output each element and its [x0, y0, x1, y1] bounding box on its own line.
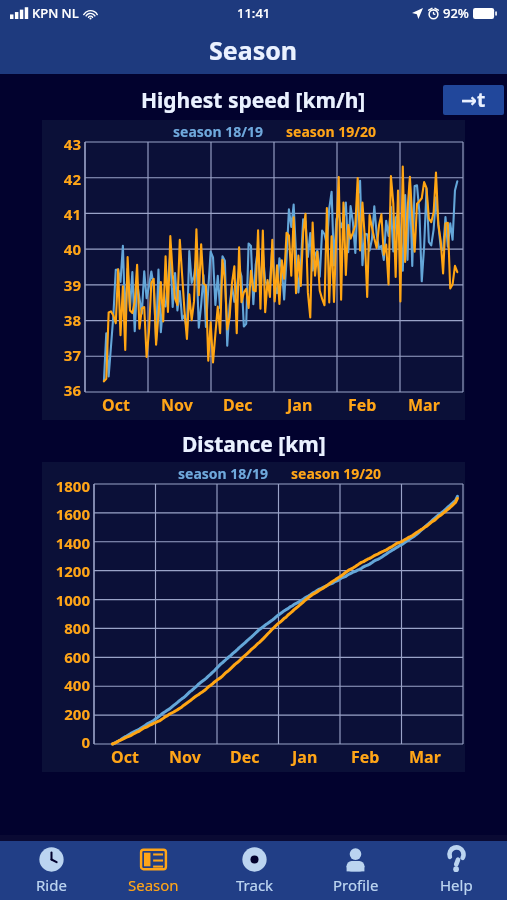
staticText: Help [440, 875, 473, 895]
staticText: Mar [408, 394, 440, 416]
staticText: Nov [169, 746, 201, 768]
staticText: Jan [292, 746, 318, 768]
staticText: Dec [230, 746, 260, 768]
staticText: →t [461, 87, 486, 113]
staticText: 41 [63, 204, 81, 224]
staticText: Season [128, 875, 179, 895]
button[interactable]: Profile [305, 841, 406, 900]
staticText: 39 [63, 275, 81, 295]
staticText: Mar [409, 746, 441, 768]
staticText: 42 [63, 169, 81, 189]
button[interactable]: Switch to time axis [443, 85, 504, 115]
staticText: 37 [63, 345, 81, 365]
button[interactable]: Track [204, 841, 305, 900]
staticText: Dec [223, 394, 253, 416]
staticText: season 19/20 [286, 122, 377, 141]
button[interactable]: Season [102, 841, 204, 900]
staticText: season 18/19 [173, 122, 264, 141]
staticText: 43 [63, 134, 81, 154]
staticText: 11:41 [237, 4, 271, 22]
staticText: 92% [443, 4, 469, 22]
staticText: 1800 [55, 476, 90, 496]
staticText: 1000 [55, 590, 90, 610]
staticText: Highest speed [km/h] [141, 86, 366, 115]
staticText: 400 [64, 675, 90, 695]
staticText: Ride [36, 875, 67, 895]
staticText: Feb [351, 746, 380, 768]
staticText: Oct [102, 394, 130, 416]
staticText: season 19/20 [291, 464, 382, 483]
staticText: Distance [km] [182, 430, 326, 459]
staticText: 38 [63, 310, 81, 330]
staticText: Feb [348, 394, 377, 416]
staticText: Track [236, 875, 274, 895]
staticText: Oct [111, 746, 139, 768]
staticText: 0 [81, 732, 90, 752]
button[interactable]: Ride [0, 841, 102, 900]
staticText: Profile [333, 875, 379, 895]
staticText: KPN NL [32, 4, 79, 22]
staticText: season 18/19 [178, 464, 269, 483]
staticText: Season [209, 33, 298, 67]
staticText: 1400 [55, 533, 90, 553]
staticText: 800 [64, 618, 90, 638]
staticText: 600 [64, 647, 90, 667]
staticText: 200 [64, 704, 90, 724]
staticText: Nov [161, 394, 193, 416]
staticText: 40 [63, 239, 81, 259]
button[interactable]: Help [406, 841, 507, 900]
staticText: 1600 [55, 504, 90, 524]
staticText: Jan [287, 394, 313, 416]
staticText: 36 [63, 380, 81, 400]
staticText: 1200 [55, 561, 90, 581]
